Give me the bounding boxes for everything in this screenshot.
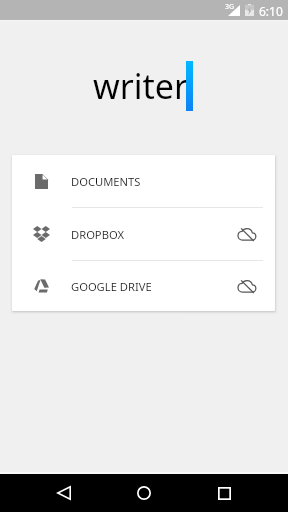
button[interactable]: Home <box>121 474 167 512</box>
button[interactable]: Recents <box>201 474 247 512</box>
button[interactable]: GOOGLE DRIVE <box>12 261 275 311</box>
button[interactable]: DROPBOX <box>12 208 275 260</box>
staticText: DROPBOX <box>71 227 124 242</box>
staticText: DOCUMENTS <box>71 174 141 189</box>
other: Not synced <box>218 261 275 311</box>
staticText: 6:10 <box>259 3 283 19</box>
other: Not synced <box>218 208 275 260</box>
staticText: GOOGLE DRIVE <box>71 279 152 294</box>
button[interactable]: Back <box>41 474 87 512</box>
staticText: 3G <box>225 2 235 12</box>
staticText: writer <box>93 63 189 109</box>
button[interactable]: DOCUMENTS <box>12 155 275 207</box>
